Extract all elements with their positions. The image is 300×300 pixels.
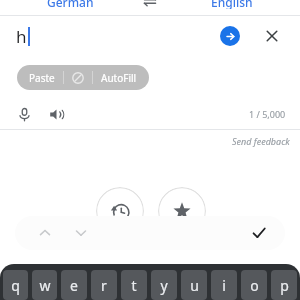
staticText: English [211,0,253,9]
staticText: AutoFill [101,71,137,85]
button[interactable]: Clear [258,22,286,50]
staticText: e [70,276,78,295]
staticText: German [47,0,94,9]
button[interactable]: English [192,0,272,9]
button[interactable]: Paste [17,65,149,90]
staticText: t [131,276,137,295]
staticText: o [250,276,259,295]
button[interactable]: p [271,270,297,300]
staticText: u [190,276,199,295]
button[interactable]: Swap languages [138,0,162,9]
button[interactable]: i [211,270,237,300]
button[interactable]: Voice input [9,99,39,129]
button[interactable]: Saved [158,187,206,235]
staticText: 1 / 5,000 [249,108,286,120]
staticText: y [160,276,168,295]
button[interactable]: German [30,0,110,9]
staticText: i [222,276,226,295]
button[interactable]: o [241,270,267,300]
staticText: r [101,276,107,295]
staticText: Paste [29,71,55,85]
button[interactable]: Previous [31,219,59,247]
button[interactable]: q [3,270,28,300]
button[interactable]: e [61,270,87,300]
button[interactable]: Translate [215,21,245,51]
staticText: w [39,276,51,295]
button[interactable]: History [96,187,144,235]
button[interactable]: r [91,270,117,300]
button[interactable]: u [181,270,207,300]
staticText: q [11,276,20,295]
button[interactable]: Listen [41,99,71,129]
button[interactable]: y [151,270,177,300]
staticText: Send feedback [232,135,290,147]
staticText: p [280,276,289,295]
staticText: h [16,25,27,48]
button[interactable]: Done [245,219,273,247]
button[interactable]: w [32,270,57,300]
button[interactable]: Send feedback [232,135,290,147]
button[interactable]: t [121,270,147,300]
button[interactable]: Next [67,219,95,247]
